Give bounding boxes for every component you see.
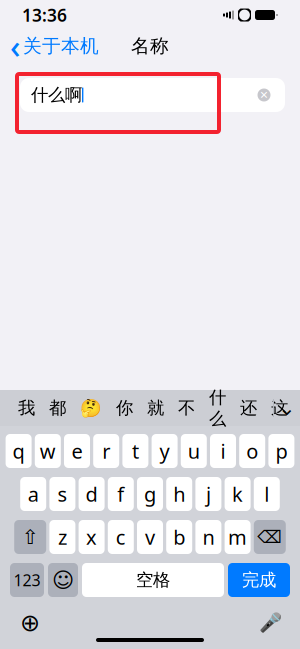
staticText: 什么啊	[31, 84, 82, 106]
staticText: u	[188, 438, 200, 464]
button[interactable]: b	[166, 520, 192, 554]
button[interactable]: m	[225, 520, 251, 554]
staticText: 这	[271, 397, 288, 419]
button[interactable]: f	[108, 477, 134, 511]
button[interactable]: 完成	[228, 563, 290, 597]
staticText: 什么	[209, 387, 226, 429]
staticText: f	[117, 481, 124, 507]
button[interactable]: Hide suggestions	[274, 390, 300, 426]
staticText: 不	[178, 397, 195, 419]
staticText: z	[58, 524, 67, 550]
staticText: v	[145, 524, 155, 550]
button[interactable]: l	[254, 477, 280, 511]
staticText: ⊕	[20, 609, 40, 637]
staticText: 都	[49, 397, 66, 419]
button[interactable]: Switch keyboard	[12, 605, 48, 641]
button[interactable]: c	[108, 520, 134, 554]
button[interactable]: Dictation	[252, 605, 288, 641]
staticText: o	[246, 438, 258, 464]
staticText: n	[202, 524, 214, 550]
button[interactable]: u	[181, 434, 207, 468]
staticText: x	[86, 524, 97, 550]
staticText: i	[220, 438, 225, 464]
staticText: ☺	[52, 568, 74, 592]
staticText: y	[160, 438, 170, 464]
button[interactable]: 还	[233, 390, 264, 426]
staticText: 你	[116, 397, 133, 419]
staticText: a	[28, 481, 39, 507]
button[interactable]: j	[195, 477, 221, 511]
staticText: 空格	[136, 569, 170, 591]
button[interactable]: 你	[109, 390, 140, 426]
button[interactable]: 就	[140, 390, 171, 426]
button[interactable]: q	[6, 434, 32, 468]
staticText: h	[173, 481, 185, 507]
button[interactable]: 不	[171, 390, 202, 426]
staticText: 🎤	[258, 612, 281, 634]
staticText: 🤔	[80, 398, 102, 418]
button[interactable]: Delete	[254, 520, 286, 554]
staticText: 我	[18, 397, 35, 419]
button[interactable]: z	[49, 520, 75, 554]
button[interactable]: 空格	[82, 563, 224, 597]
button[interactable]: 🤔	[73, 390, 109, 426]
staticText: 关于本机	[23, 34, 99, 57]
button[interactable]: v	[137, 520, 163, 554]
button[interactable]: i	[210, 434, 236, 468]
button[interactable]: 都	[42, 390, 73, 426]
staticText: b	[173, 524, 185, 550]
staticText: l	[264, 481, 269, 507]
button[interactable]: r	[93, 434, 119, 468]
button[interactable]: e	[64, 434, 90, 468]
staticText: 13:36	[22, 3, 67, 26]
staticText: ⌄	[278, 397, 295, 419]
staticText: 123	[13, 569, 40, 591]
button[interactable]: Clear text	[254, 85, 274, 105]
staticText: ✕	[259, 89, 268, 101]
button[interactable]: o	[239, 434, 265, 468]
button[interactable]: ‹	[0, 30, 109, 62]
button[interactable]: h	[166, 477, 192, 511]
staticText: ‹	[10, 25, 20, 67]
staticText: t	[132, 438, 139, 464]
button[interactable]: g	[137, 477, 163, 511]
button[interactable]: d	[79, 477, 105, 511]
staticText: 就	[147, 397, 164, 419]
staticText: s	[57, 481, 67, 507]
staticText: k	[232, 481, 243, 507]
staticText: p	[275, 438, 287, 464]
staticText: m	[228, 524, 247, 550]
staticText: ⇧	[22, 526, 39, 548]
button[interactable]: Shift	[14, 520, 46, 554]
button[interactable]: Emoji	[48, 563, 78, 597]
button[interactable]: a	[20, 477, 46, 511]
button[interactable]: 我	[11, 390, 42, 426]
staticText: d	[86, 481, 98, 507]
staticText: 名称	[131, 34, 169, 57]
staticText: r	[102, 438, 110, 464]
staticText: 完成	[242, 569, 276, 591]
staticText: j	[206, 481, 211, 507]
staticText: ⌫	[257, 527, 282, 547]
staticText: q	[13, 438, 25, 464]
button[interactable]: p	[268, 434, 294, 468]
button[interactable]: s	[49, 477, 75, 511]
staticText: g	[144, 481, 156, 507]
button[interactable]: 这	[264, 390, 295, 426]
button[interactable]: y	[152, 434, 178, 468]
staticText: c	[116, 524, 126, 550]
button[interactable]: x	[79, 520, 105, 554]
staticText: 还	[240, 397, 257, 419]
button[interactable]: w	[35, 434, 61, 468]
staticText: w	[40, 438, 56, 464]
button[interactable]: t	[122, 434, 148, 468]
button[interactable]: k	[225, 477, 251, 511]
button[interactable]: n	[195, 520, 221, 554]
button[interactable]: 123	[10, 563, 44, 597]
button[interactable]: 什么	[202, 390, 233, 426]
staticText: e	[71, 438, 82, 464]
